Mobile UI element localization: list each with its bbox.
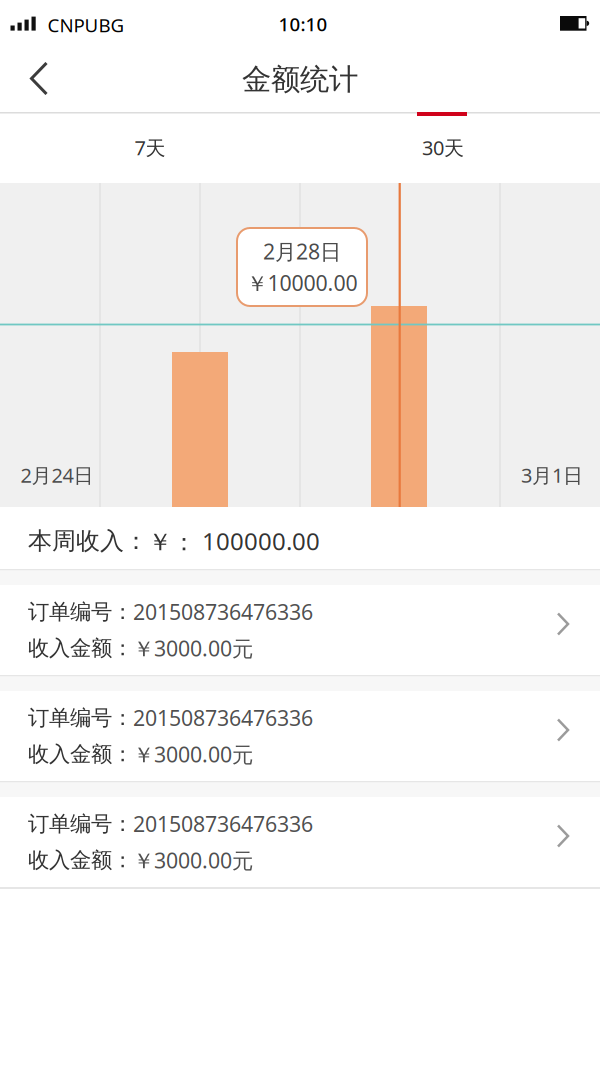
staticText: ￥3000.00元 <box>133 846 253 874</box>
staticText: 30天 <box>422 134 464 161</box>
staticText: 收入金额： <box>28 635 133 661</box>
staticText: 201508736476336 <box>133 598 313 626</box>
staticText: 3月1日 <box>521 462 583 488</box>
staticText: 201508736476336 <box>133 810 313 838</box>
staticText: ￥3000.00元 <box>133 634 253 662</box>
button[interactable]: 30天 <box>298 112 588 183</box>
button[interactable]: 订单编号： <box>0 691 600 781</box>
staticText: ￥3000.00元 <box>133 740 253 768</box>
button[interactable] <box>0 61 80 97</box>
staticText: 订单编号： <box>28 599 133 625</box>
staticText: 201508736476336 <box>133 704 313 732</box>
staticText: 2月28日 <box>263 237 341 265</box>
staticText: CNPUBG <box>47 13 124 37</box>
staticText: 订单编号： <box>28 705 133 731</box>
staticText: 收入金额： <box>28 847 133 873</box>
staticText: 金额统计 <box>242 61 358 97</box>
staticText: 收入金额： <box>28 741 133 767</box>
staticText: 本周收入： <box>28 526 148 556</box>
button[interactable]: 订单编号： <box>0 797 600 887</box>
staticText: 10:10 <box>278 12 327 36</box>
button[interactable]: 订单编号： <box>0 585 600 675</box>
staticText: 2月24日 <box>20 462 93 488</box>
staticText: 订单编号： <box>28 811 133 837</box>
button[interactable]: 7天 <box>5 112 295 183</box>
staticText: 7天 <box>134 134 165 161</box>
staticText: ￥10000.00 <box>246 268 357 297</box>
staticText: ￥： 100000.00 <box>148 525 320 557</box>
